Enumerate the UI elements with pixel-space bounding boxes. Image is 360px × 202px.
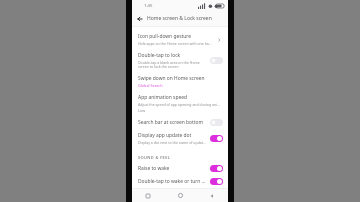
staticText: Display app update dot [138,132,192,139]
staticText: App animation speed [138,94,187,101]
button[interactable]: Double-tap to lock [132,49,228,72]
button[interactable]: App animation speed [132,91,228,116]
button[interactable]: Back [196,189,228,202]
button[interactable]: Switch off [210,119,223,126]
button[interactable]: Switch on [210,135,223,142]
staticText: Display a dot next to the name of update… [138,140,207,145]
staticText: Double-tap to lock [138,52,181,59]
button[interactable]: Switch on [210,178,223,185]
staticText: Double-tap a blank area on the Home scre… [138,60,207,69]
staticText: Home screen & Lock screen [147,15,212,22]
staticText: Search bar at screen bottom [138,119,204,126]
staticText: 1:45 [144,3,153,9]
staticText: SOUND & FEEL [138,155,171,160]
staticText: Adjust the speed of app opening and clos… [138,102,223,107]
staticText: Hide apps on the Home screen with one ha… [138,41,212,46]
button[interactable]: Double-tap to wake or turn off screen [132,175,228,188]
button[interactable]: Switch on [210,165,223,172]
staticText: Icon pull-down gesture [138,33,191,40]
button[interactable]: Back [132,11,147,26]
button[interactable]: Raise to wake [132,162,228,175]
button[interactable]: Recent apps [132,189,164,202]
staticText: Raise to wake [138,165,170,172]
button[interactable]: Home [164,189,196,202]
button[interactable]: Icon pull-down gesture [132,30,228,49]
button[interactable]: Display app update dot [132,129,228,148]
staticText: Double-tap to wake or turn off screen [138,178,207,185]
button[interactable]: Swipe down on Home screen [132,72,228,91]
staticText: Global Search [138,83,163,88]
staticText: Swipe down on Home screen [138,75,205,82]
staticText: Low [138,108,146,113]
button[interactable]: Search bar at screen bottom [132,116,228,129]
button[interactable]: Switch off [210,57,223,64]
